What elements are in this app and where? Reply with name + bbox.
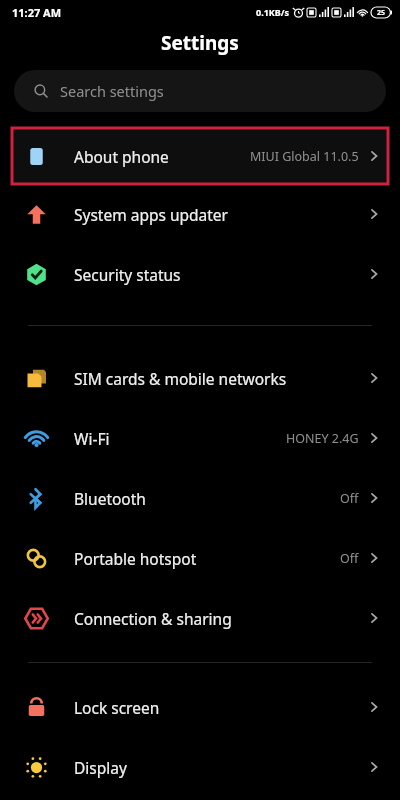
- button[interactable]: Bluetooth: [0, 468, 400, 528]
- button[interactable]: Security status: [0, 244, 400, 304]
- staticText: Portable hotspot: [74, 548, 340, 569]
- staticText: Connection & sharing: [74, 608, 366, 629]
- button[interactable]: Lock screen: [0, 677, 400, 737]
- button[interactable]: Wi-Fi: [0, 408, 400, 468]
- staticText: Settings: [161, 30, 239, 56]
- staticText: MIUI Global 11.0.5: [250, 148, 359, 165]
- staticText: Off: [340, 550, 359, 567]
- staticText: Security status: [74, 264, 366, 285]
- staticText: Bluetooth: [74, 488, 340, 509]
- staticText: 11:27 AM: [12, 5, 62, 20]
- staticText: Lock screen: [74, 697, 366, 718]
- button[interactable]: System apps updater: [0, 184, 400, 244]
- button[interactable]: Display: [0, 737, 400, 797]
- button[interactable]: SIM cards & mobile networks: [0, 348, 400, 408]
- staticText: HONEY 2.4G: [286, 430, 359, 447]
- staticText: Search settings: [60, 81, 164, 101]
- staticText: System apps updater: [74, 204, 366, 225]
- button[interactable]: Connection & sharing: [0, 588, 400, 648]
- button[interactable]: About phone: [12, 128, 388, 184]
- staticText: About phone: [74, 146, 250, 167]
- button[interactable]: Portable hotspot: [0, 528, 400, 588]
- staticText: 0.1KB/s: [256, 6, 290, 18]
- staticText: Display: [74, 757, 366, 778]
- staticText: 25: [377, 8, 386, 18]
- staticText: Off: [340, 490, 359, 507]
- staticText: SIM cards & mobile networks: [74, 368, 366, 389]
- staticText: Wi-Fi: [74, 428, 286, 449]
- button[interactable]: Search settings: [14, 70, 386, 112]
